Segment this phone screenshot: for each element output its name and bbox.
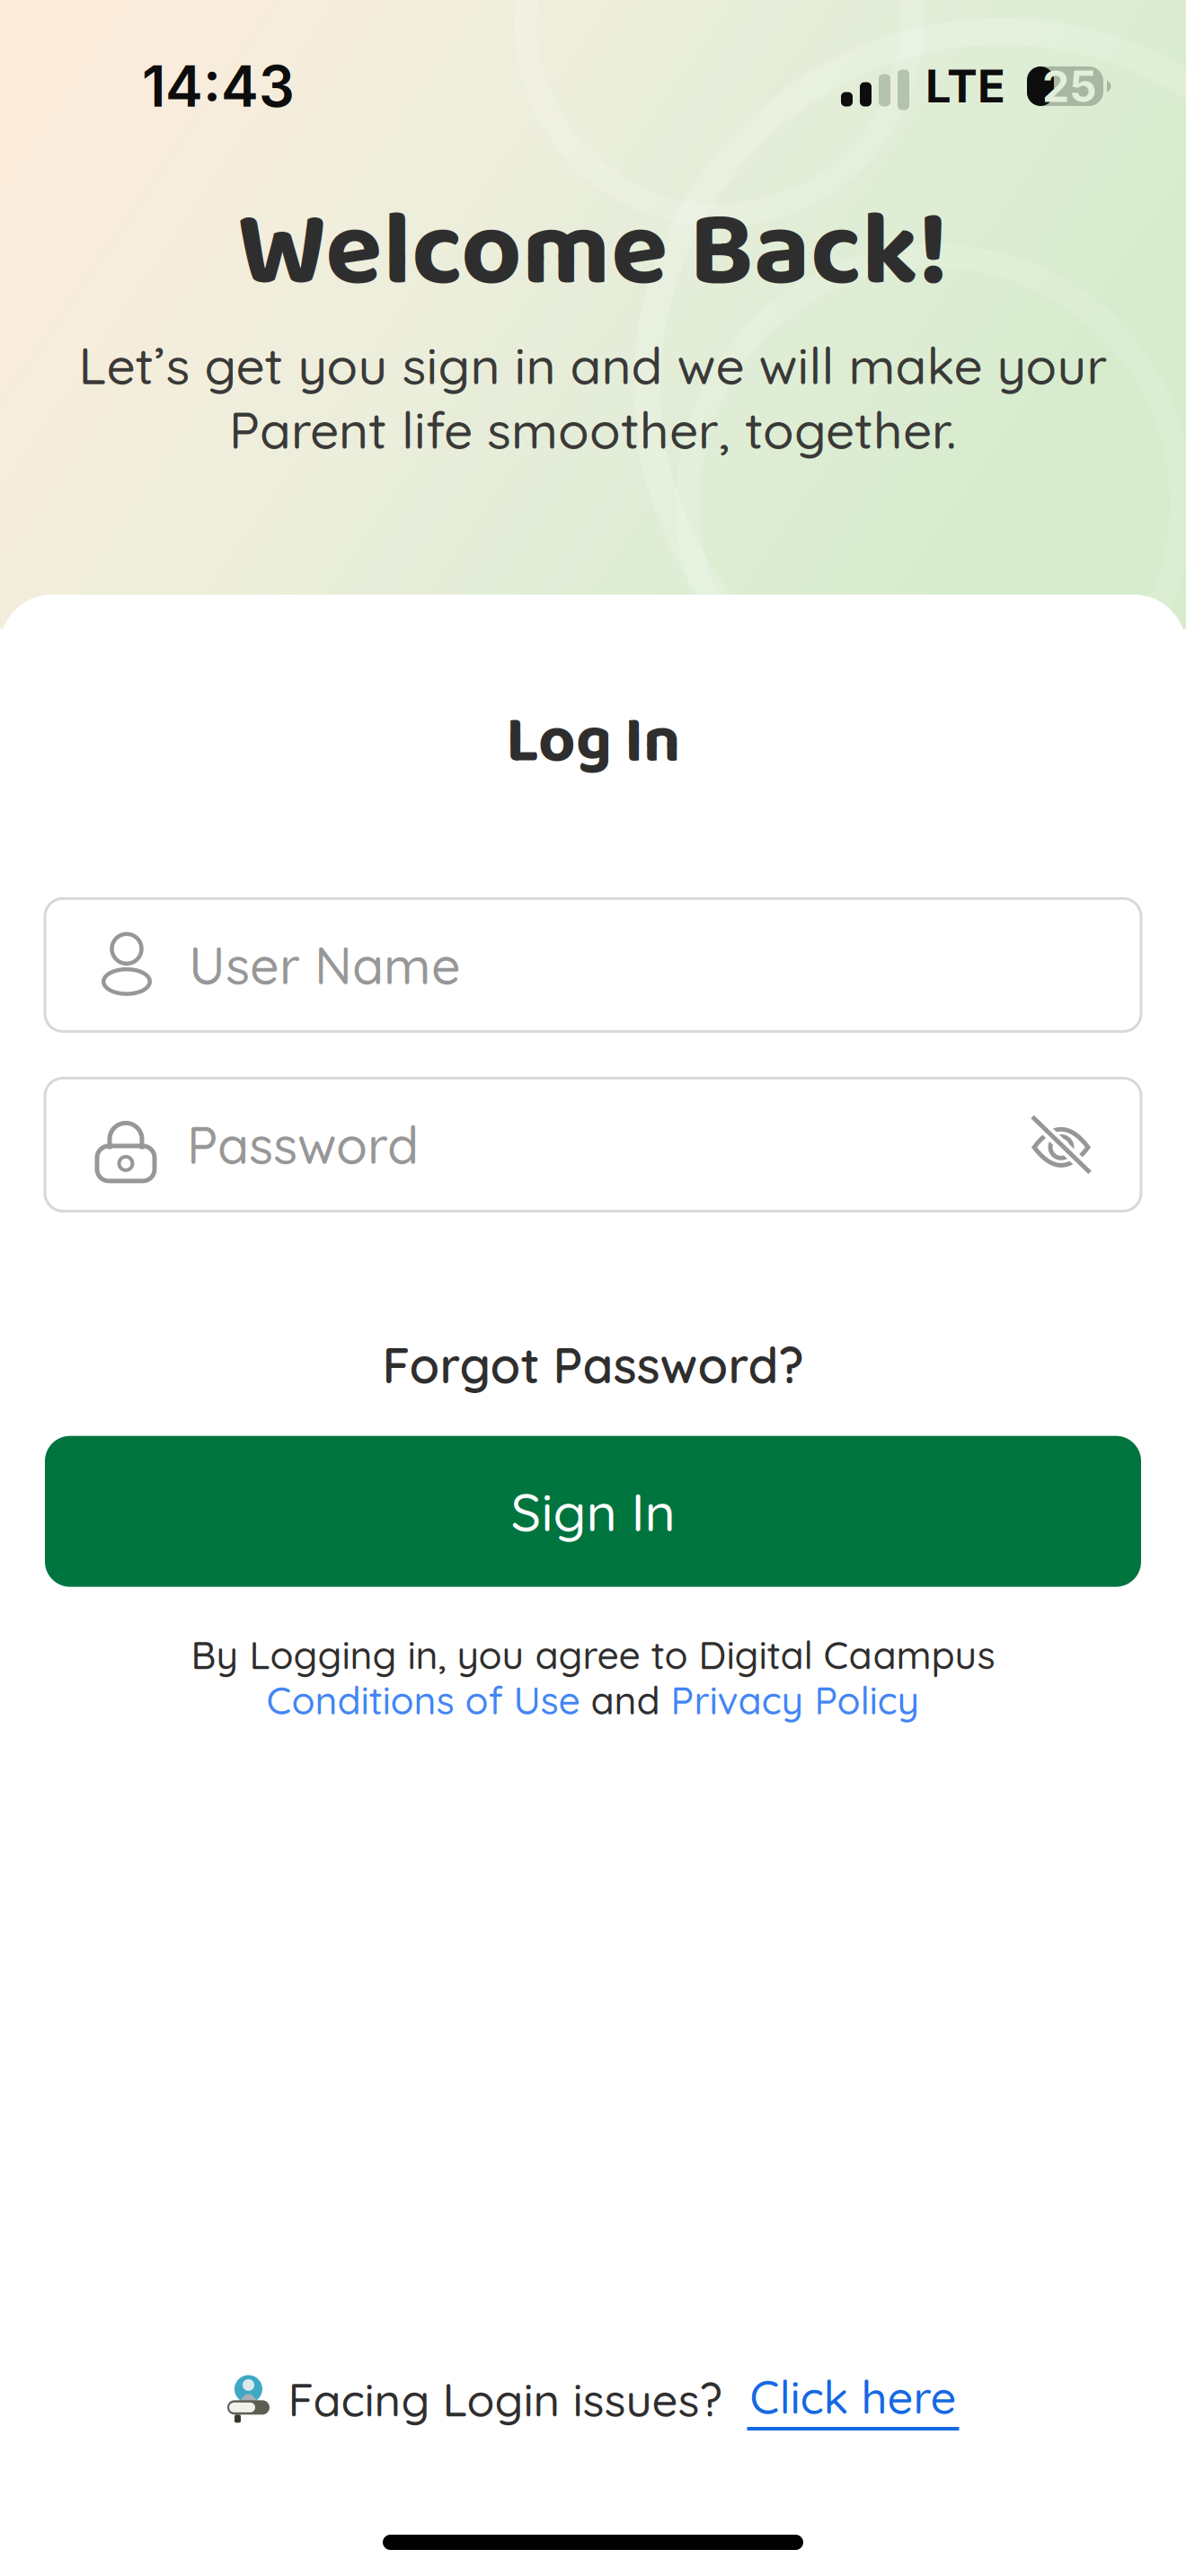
staticText: User Name (189, 933, 461, 997)
staticText: Click here (750, 2368, 956, 2425)
staticText: Conditions of Use (266, 1676, 580, 1724)
button[interactable]: Privacy Policy (671, 1676, 920, 1724)
staticText: Let’s get you sign in and we will make y… (79, 333, 1107, 397)
staticText: Welcome Back! (237, 168, 949, 337)
button[interactable]: Conditions of Use (266, 1676, 580, 1724)
staticText: Facing Login issues? (288, 2371, 722, 2428)
staticText: 14:43 (142, 52, 295, 120)
staticText: LTE (925, 59, 1005, 114)
staticText: and (580, 1676, 671, 1724)
staticText: Parent life smoother, together. (229, 398, 957, 461)
button[interactable]: Forgot Password? (382, 1334, 804, 1395)
button[interactable]: User Name (45, 898, 1141, 1031)
staticText: By Logging in, you agree to Digital Caam… (191, 1631, 995, 1679)
staticText: Password (187, 1112, 419, 1177)
staticText: 25 (1042, 60, 1097, 112)
button[interactable]: Sign In (45, 1436, 1141, 1587)
button[interactable]: Click here (747, 2368, 959, 2430)
staticText: Forgot Password? (382, 1334, 804, 1395)
staticText: Log In (506, 691, 680, 794)
staticText: Sign In (511, 1478, 675, 1544)
button[interactable]: Password (45, 1078, 1141, 1211)
staticText: Privacy Policy (671, 1676, 920, 1724)
